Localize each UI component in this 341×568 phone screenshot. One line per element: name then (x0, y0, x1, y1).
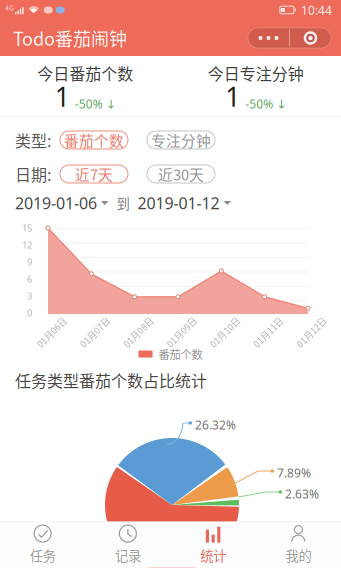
staticText: 近7天 (75, 163, 113, 185)
staticText: 任务类型番茄个数占比统计 (15, 368, 207, 392)
staticText: 2019-01-06 (15, 192, 97, 214)
staticText: 到 (116, 193, 129, 213)
button[interactable]: 近30天 (147, 165, 215, 183)
staticText: 01月06日 (34, 329, 72, 341)
staticText: 番茄个数 (64, 129, 124, 151)
button[interactable]: 2019-01-12 (137, 192, 231, 214)
staticText: 01月10日 (207, 329, 245, 341)
button[interactable]: 番茄个数 (60, 131, 128, 149)
button[interactable]: 任务 (0, 522, 85, 568)
staticText: 我的 (285, 546, 311, 565)
staticText: 记录 (115, 546, 141, 565)
button[interactable]: 近7天 (60, 165, 128, 183)
staticText: 任务 (30, 546, 56, 565)
staticText: 今日专注分钟 (208, 61, 304, 85)
staticText: 10:44 (301, 2, 332, 18)
button[interactable]: 专注分钟 (147, 131, 215, 149)
staticText: 番茄个数 (158, 346, 202, 362)
staticText: 2.63% (285, 486, 319, 502)
staticText: 7.89% (277, 465, 311, 481)
button[interactable]: 统计 (170, 522, 256, 568)
staticText: 统计 (200, 546, 226, 565)
staticText: 4G (5, 4, 14, 12)
staticText: 9 (27, 256, 32, 268)
button[interactable]: 我的 (256, 522, 341, 568)
staticText: Todo番茄闹钟 (13, 25, 127, 51)
staticText: 日期: (15, 162, 51, 186)
staticText: -50% ↓ (75, 96, 116, 112)
staticText: 专注分钟 (151, 129, 211, 151)
staticText: 2019-01-12 (137, 192, 219, 214)
button[interactable]: 2019-01-06 (15, 192, 108, 214)
staticText: -50% ↓ (245, 96, 286, 112)
staticText: 3 (27, 290, 32, 302)
staticText: 6 (27, 273, 32, 285)
staticText: 1 (225, 79, 240, 114)
staticText: 01月11日 (250, 329, 288, 341)
staticText: 1 (55, 79, 70, 114)
button[interactable]: More options (248, 28, 331, 48)
staticText: 01月08日 (121, 329, 159, 341)
staticText: 类型: (15, 128, 51, 152)
staticText: 01月12日 (294, 329, 332, 341)
staticText: 01月09日 (164, 329, 202, 341)
staticText: 26.32% (195, 417, 236, 433)
staticText: 15 (22, 222, 32, 234)
staticText: 12 (22, 239, 32, 251)
staticText: 今日番茄个数 (37, 61, 133, 85)
staticText: 01月07日 (77, 329, 115, 341)
staticText: 近30天 (158, 163, 204, 185)
staticText: 0 (27, 307, 32, 319)
button[interactable]: 记录 (85, 522, 170, 568)
